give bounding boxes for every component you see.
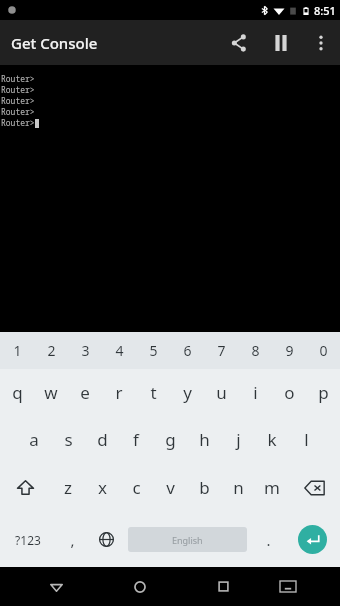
staticText: . [266, 530, 271, 550]
staticText: 9 [285, 341, 294, 360]
button[interactable]: 7 [204, 332, 238, 369]
staticText: x [98, 476, 107, 499]
button[interactable]: n [221, 463, 255, 512]
button[interactable]: e [68, 369, 102, 416]
button[interactable]: Enter [298, 525, 327, 554]
button[interactable]: Back [30, 567, 83, 606]
button[interactable]: 8 [238, 332, 272, 369]
staticText: a [29, 428, 39, 451]
button[interactable]: g [153, 416, 187, 463]
button[interactable]: 3 [68, 332, 102, 369]
staticText: English [172, 534, 203, 546]
button[interactable]: q [0, 369, 34, 416]
staticText: n [233, 476, 244, 499]
staticText: Router> [1, 84, 35, 95]
button[interactable]: b [187, 463, 221, 512]
button[interactable]: v [153, 463, 187, 512]
staticText: u [216, 381, 227, 404]
staticText: , [70, 530, 75, 550]
button[interactable]: 9 [272, 332, 306, 369]
button[interactable]: 4 [102, 332, 136, 369]
staticText: Router> [1, 95, 35, 106]
staticText: 4 [115, 341, 124, 360]
staticText: Router> [1, 117, 35, 128]
button[interactable]: d [85, 416, 119, 463]
staticText: o [284, 381, 295, 404]
button[interactable]: u [204, 369, 238, 416]
button[interactable]: c [119, 463, 153, 512]
staticText: s [64, 428, 73, 451]
button[interactable]: k [255, 416, 289, 463]
staticText: h [199, 428, 210, 451]
staticText: 2 [47, 341, 56, 360]
button[interactable]: Hide keyboard [262, 567, 314, 606]
staticText: 0 [319, 341, 328, 360]
button[interactable]: 6 [170, 332, 204, 369]
button[interactable]: 1 [0, 332, 34, 369]
button[interactable]: y [170, 369, 204, 416]
staticText: 5 [149, 341, 158, 360]
button[interactable]: p [306, 369, 340, 416]
button[interactable]: l [289, 416, 323, 463]
button[interactable]: 0 [306, 332, 340, 369]
staticText: z [64, 476, 72, 499]
staticText: k [267, 428, 277, 451]
button[interactable]: . [251, 512, 285, 567]
staticText: 1 [13, 341, 22, 360]
button[interactable]: Pause [260, 20, 302, 65]
button[interactable]: a [17, 416, 51, 463]
staticText: 8:51 [314, 3, 336, 18]
button[interactable]: 2 [34, 332, 68, 369]
staticText: y [183, 381, 192, 404]
button[interactable]: o [272, 369, 306, 416]
staticText: c [132, 476, 141, 499]
button[interactable]: t [136, 369, 170, 416]
button[interactable]: f [119, 416, 153, 463]
button[interactable]: Change language [89, 512, 124, 567]
staticText: ?123 [15, 532, 41, 548]
staticText: w [44, 381, 58, 404]
staticText: Get Console [11, 33, 218, 53]
button[interactable]: , [55, 512, 89, 567]
button[interactable]: Recents [197, 567, 249, 606]
staticText: v [166, 476, 175, 499]
staticText: 8 [251, 341, 260, 360]
staticText: r [115, 381, 123, 404]
button[interactable]: x [85, 463, 119, 512]
button[interactable]: r [102, 369, 136, 416]
staticText: q [12, 381, 23, 404]
button[interactable]: English [128, 527, 247, 552]
staticText: 7 [217, 341, 226, 360]
button[interactable]: Backspace [289, 463, 340, 512]
staticText: t [150, 381, 157, 404]
button[interactable]: s [51, 416, 85, 463]
staticText: Router> [1, 106, 35, 117]
staticText: j [236, 428, 241, 451]
staticText: b [199, 476, 210, 499]
button[interactable]: w [34, 369, 68, 416]
button[interactable]: h [187, 416, 221, 463]
staticText: p [318, 381, 329, 404]
button[interactable]: j [221, 416, 255, 463]
staticText: 3 [81, 341, 90, 360]
staticText: g [165, 428, 176, 451]
staticText: e [80, 381, 90, 404]
staticText: l [304, 428, 309, 451]
staticText: m [264, 476, 280, 499]
staticText: 6 [183, 341, 192, 360]
button[interactable]: Share [218, 20, 260, 65]
staticText: Router> [1, 73, 35, 84]
staticText: i [253, 381, 258, 404]
staticText: f [133, 428, 139, 451]
button[interactable]: z [51, 463, 85, 512]
button[interactable]: i [238, 369, 272, 416]
button[interactable]: More options [302, 20, 340, 65]
staticText: d [97, 428, 108, 451]
button[interactable]: ?123 [0, 512, 55, 567]
button[interactable]: Home [114, 567, 166, 606]
button[interactable]: m [255, 463, 289, 512]
button[interactable]: 5 [136, 332, 170, 369]
button[interactable]: Shift [0, 463, 51, 512]
